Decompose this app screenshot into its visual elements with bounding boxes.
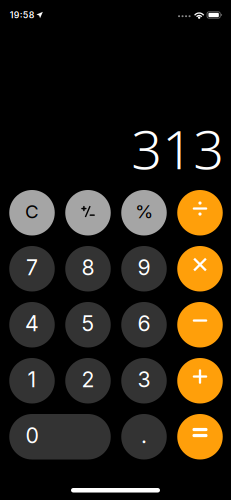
- staticText: 5: [81, 311, 94, 336]
- button[interactable]: 4: [9, 302, 55, 347]
- staticText: 3: [137, 367, 150, 392]
- staticText: C: [25, 200, 39, 223]
- staticText: 19:58: [10, 10, 35, 20]
- staticText: 1: [27, 367, 36, 392]
- button[interactable]: C: [9, 190, 55, 235]
- button[interactable]: 2: [65, 358, 111, 403]
- button[interactable]: Multiply: [177, 246, 223, 291]
- staticText: 4: [25, 311, 39, 336]
- button[interactable]: Add: [177, 358, 223, 403]
- button[interactable]: 9: [121, 246, 167, 291]
- button[interactable]: Subtract: [177, 302, 223, 347]
- button[interactable]: %: [121, 190, 167, 235]
- button[interactable]: 7: [9, 246, 55, 291]
- button[interactable]: 6: [121, 302, 167, 347]
- staticText: %: [135, 200, 153, 223]
- staticText: 8: [81, 255, 94, 280]
- staticText: 6: [137, 311, 150, 336]
- button[interactable]: 0: [9, 414, 111, 459]
- button[interactable]: 3: [121, 358, 167, 403]
- staticText: 0: [25, 423, 38, 448]
- staticText: 7: [26, 255, 38, 280]
- button[interactable]: 8: [65, 246, 111, 291]
- button[interactable]: Plus minus: [65, 190, 111, 235]
- staticText: 9: [137, 255, 150, 280]
- button[interactable]: 1: [9, 358, 55, 403]
- button[interactable]: 5: [65, 302, 111, 347]
- staticText: 2: [81, 367, 94, 392]
- button[interactable]: .: [121, 414, 167, 459]
- button[interactable]: Divide: [177, 190, 223, 235]
- staticText: 313: [131, 111, 224, 185]
- staticText: .: [141, 423, 147, 448]
- button[interactable]: Equals: [177, 414, 223, 459]
